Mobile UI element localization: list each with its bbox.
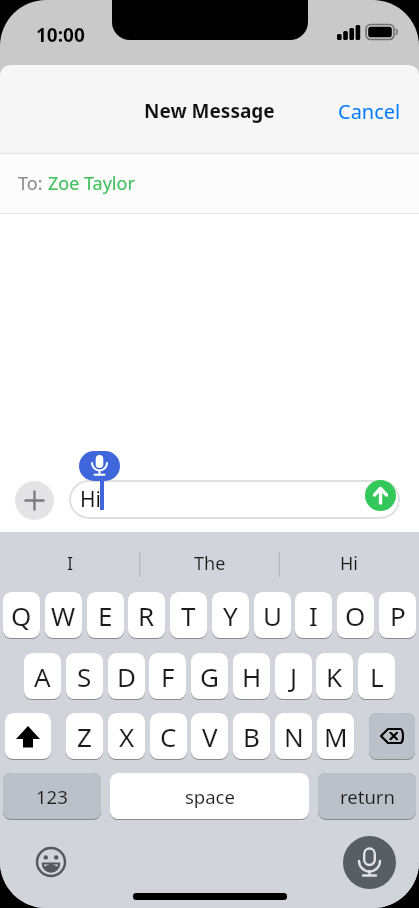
staticText: Y (223, 598, 238, 633)
button[interactable]: V (191, 713, 228, 759)
button[interactable]: C (150, 713, 187, 759)
button[interactable]: W (45, 592, 82, 638)
staticText: S (77, 659, 92, 694)
button[interactable]: Q (3, 592, 40, 638)
button[interactable]: The (140, 544, 280, 582)
staticText: M (324, 719, 348, 754)
button[interactable]: F (149, 653, 186, 699)
staticText: Hi (80, 485, 101, 514)
staticText: The (194, 551, 226, 576)
button[interactable] (15, 481, 54, 520)
staticText: O (345, 598, 366, 633)
button[interactable]: Hi (279, 544, 419, 582)
button[interactable]: To: (0, 154, 419, 213)
staticText: I (67, 551, 74, 576)
staticText: K (326, 659, 343, 694)
button[interactable]: I (295, 592, 332, 638)
staticText: A (34, 659, 51, 694)
button[interactable] (365, 480, 396, 511)
staticText: G (200, 659, 219, 694)
button[interactable] (79, 451, 120, 481)
button[interactable]: Hi (69, 480, 400, 519)
staticText: F (161, 659, 175, 694)
button[interactable]: B (233, 713, 270, 759)
staticText: T (181, 598, 196, 633)
button[interactable] (343, 836, 396, 889)
button[interactable]: E (87, 592, 124, 638)
button[interactable]: 123 (3, 773, 101, 819)
button[interactable]: Cancel (338, 98, 401, 125)
staticText: X (119, 719, 135, 754)
button[interactable]: P (379, 592, 416, 638)
staticText: Cancel (338, 98, 401, 125)
button[interactable]: S (66, 653, 103, 699)
button[interactable]: L (358, 653, 395, 699)
button[interactable] (369, 713, 415, 759)
button[interactable]: U (254, 592, 291, 638)
button[interactable]: K (316, 653, 353, 699)
staticText: return (340, 784, 395, 809)
staticText: New Message (144, 98, 275, 124)
staticText: R (138, 598, 155, 633)
staticText: Q (11, 598, 32, 633)
staticText: D (117, 659, 136, 694)
button[interactable]: T (170, 592, 207, 638)
button[interactable]: return (318, 773, 416, 819)
staticText: space (185, 784, 235, 809)
staticText: P (390, 598, 406, 633)
button[interactable] (34, 845, 68, 879)
button[interactable]: I (0, 544, 140, 582)
staticText: J (290, 659, 298, 694)
staticText: 10:00 (36, 22, 85, 48)
staticText: N (284, 719, 304, 754)
button[interactable]: J (275, 653, 312, 699)
staticText: L (370, 659, 384, 694)
staticText: V (202, 719, 218, 754)
button[interactable]: X (108, 713, 145, 759)
button[interactable]: D (108, 653, 145, 699)
staticText: 123 (36, 784, 68, 809)
button[interactable]: N (275, 713, 312, 759)
button[interactable] (5, 713, 51, 759)
button[interactable]: Z (66, 713, 103, 759)
staticText: B (243, 719, 260, 754)
button[interactable]: H (233, 653, 270, 699)
staticText: C (160, 719, 177, 754)
button[interactable]: G (191, 653, 228, 699)
button[interactable]: M (317, 713, 354, 759)
staticText: Z (77, 719, 92, 754)
staticText: W (51, 598, 76, 633)
staticText: I (309, 598, 318, 633)
staticText: Hi (340, 551, 358, 576)
button[interactable]: R (128, 592, 165, 638)
staticText: To: (18, 171, 48, 196)
button[interactable]: Y (212, 592, 249, 638)
button[interactable]: A (24, 653, 61, 699)
staticText: E (98, 598, 113, 633)
button[interactable]: O (337, 592, 374, 638)
staticText: H (242, 659, 262, 694)
staticText: Zoe Taylor (48, 171, 135, 196)
staticText: U (263, 598, 283, 633)
button[interactable]: space (110, 773, 309, 819)
